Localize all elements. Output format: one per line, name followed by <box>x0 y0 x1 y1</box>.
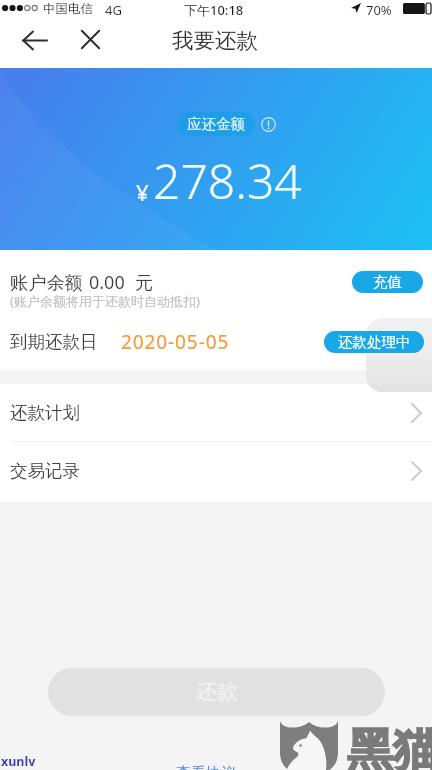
staticText: 查看协议 <box>176 764 236 770</box>
button[interactable]: 交易记录 <box>0 442 432 499</box>
staticText: 278.34 <box>153 148 302 213</box>
staticText: 我要还款 <box>172 27 258 54</box>
button[interactable]: Info <box>260 116 276 132</box>
staticText: 还款 <box>196 679 238 705</box>
staticText: ¥ <box>136 177 149 207</box>
staticText: 到期还款日 <box>10 331 98 353</box>
button[interactable]: 还款处理中 <box>324 331 424 353</box>
button[interactable]: 还款 <box>48 668 385 716</box>
staticText: xunlv <box>1 753 36 770</box>
staticText: (账户余额将用于还款时自动抵扣) <box>10 292 200 310</box>
button[interactable]: Close <box>68 17 113 61</box>
staticText: 还款计划 <box>10 402 80 424</box>
button[interactable]: 充值 <box>352 271 423 293</box>
staticText: 中国电信 <box>43 1 93 17</box>
staticText: 下午10:18 <box>184 1 244 19</box>
button[interactable]: Back <box>12 18 57 62</box>
staticText: 应还金额 <box>187 115 245 133</box>
staticText: 2020-05-05 <box>121 329 230 355</box>
staticText: 0.00 <box>89 270 125 295</box>
button[interactable]: 应还金额 <box>187 112 245 136</box>
staticText: 账户余额 <box>10 271 83 294</box>
staticText: 充值 <box>373 273 402 291</box>
staticText: 还款处理中 <box>338 333 411 351</box>
staticText: 4G <box>105 1 122 19</box>
staticText: 元 <box>135 271 154 294</box>
staticText: 交易记录 <box>10 460 80 482</box>
staticText: 黑猫 <box>347 722 432 770</box>
staticText: 70% <box>366 1 392 19</box>
button[interactable]: 还款计划 <box>0 384 432 441</box>
